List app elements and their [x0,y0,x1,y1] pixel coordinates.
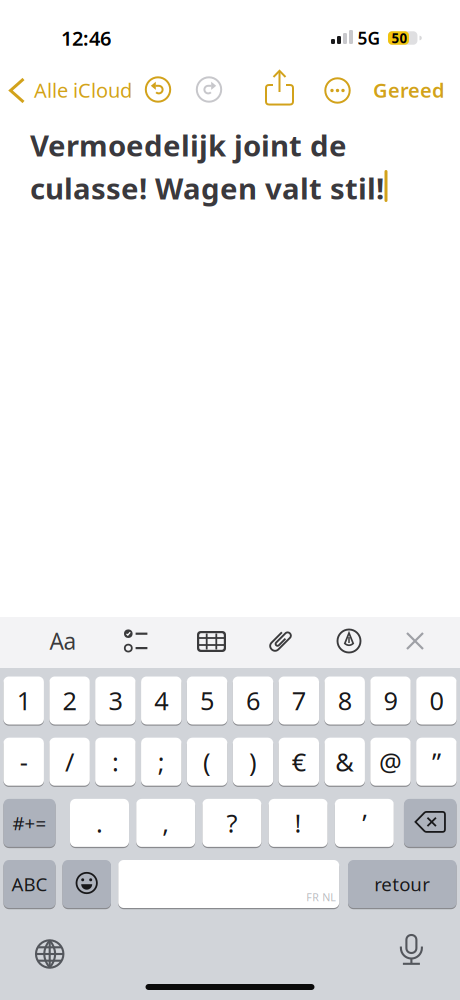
button[interactable]: Verwijder [404,798,456,848]
staticText: Aa [49,626,76,656]
button[interactable]: , [136,798,195,848]
button[interactable]: ” [416,737,457,787]
staticText: 4 [154,684,168,717]
button[interactable]: retour [348,859,456,909]
button[interactable]: 9 [370,675,411,725]
staticText: ABC [11,872,47,896]
button[interactable]: Herstel [143,74,173,104]
button[interactable]: Meer [322,75,352,105]
button[interactable]: ABC [3,859,55,909]
button[interactable]: 2 [49,675,90,725]
staticText: : [112,745,119,778]
staticText: @ [379,745,402,778]
staticText: Gereed [373,77,445,103]
staticText: 12:46 [61,25,111,51]
staticText: ? [226,806,237,840]
button[interactable]: : [95,737,136,787]
button[interactable]: #+= [3,798,55,848]
button[interactable]: Deel [260,68,298,108]
staticText: . [96,806,103,840]
button[interactable]: Emoji [62,859,111,909]
staticText: culasse! Wagen valt stil! [30,168,384,207]
staticText: 2 [63,684,77,717]
staticText: / [65,745,74,778]
button[interactable]: / [49,737,90,787]
button[interactable]: Bijlage [262,623,298,659]
button[interactable]: € [279,737,319,787]
button[interactable]: 5 [187,675,227,725]
button[interactable]: . [70,798,129,848]
button[interactable]: ( [187,737,227,787]
button[interactable]: Spatie [118,859,339,909]
button[interactable]: ) [233,737,273,787]
button[interactable]: & [324,737,365,787]
button[interactable]: Tabel [193,623,229,659]
staticText: 5G [357,26,380,49]
staticText: #+= [12,810,46,835]
staticText: ” [432,745,441,778]
button[interactable]: Opmaak [41,619,85,663]
button[interactable]: - [3,737,44,787]
staticText: & [335,745,354,778]
staticText: , [162,806,169,840]
button[interactable]: Markeer [331,623,367,659]
staticText: € [292,745,306,778]
button[interactable]: Dicteer [394,934,428,968]
button[interactable]: ’ [335,798,394,848]
button[interactable]: Alle iCloud [5,72,131,108]
staticText: 9 [383,684,397,717]
staticText: ) [249,745,257,778]
staticText: 8 [338,684,352,717]
button[interactable]: 1 [3,675,44,725]
staticText: Vermoedelijk joint de [30,125,347,164]
staticText: - [20,745,28,778]
button[interactable]: 6 [233,675,273,725]
button[interactable]: 4 [141,675,182,725]
button[interactable]: ! [269,798,328,848]
button[interactable]: ; [141,737,182,787]
button[interactable]: 0 [416,675,457,725]
button[interactable]: 8 [324,675,365,725]
button[interactable]: Volgend toetsenbord [33,937,67,971]
staticText: 0 [429,684,443,717]
staticText: 5 [200,684,214,717]
button[interactable]: Sluit [397,623,433,659]
button[interactable]: 3 [95,675,136,725]
button[interactable]: 7 [279,675,319,725]
staticText: 3 [108,684,122,717]
staticText: 6 [246,684,260,717]
staticText: 1 [17,684,31,717]
staticText: FR NL [306,890,336,904]
staticText: ; [158,745,165,778]
staticText: ! [295,806,302,840]
button[interactable]: ? [202,798,261,848]
staticText: ( [203,745,211,778]
button[interactable]: Opnieuw [194,74,224,104]
button[interactable]: @ [370,737,411,787]
staticText: Alle iCloud [34,77,132,103]
staticText: ’ [362,806,366,840]
button[interactable]: Checklist [121,624,155,658]
staticText: retour [374,872,430,896]
button[interactable]: Gereed [373,77,445,103]
staticText: 7 [292,684,306,717]
staticText: 50 [391,29,407,47]
